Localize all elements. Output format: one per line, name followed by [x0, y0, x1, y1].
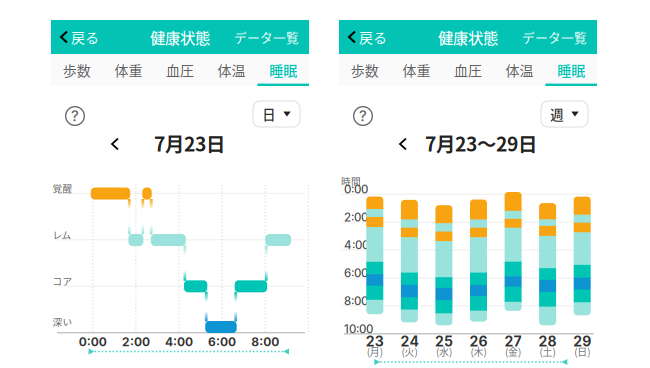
staticText: 血圧 — [166, 60, 194, 80]
button[interactable]: ヘルプ — [62, 103, 88, 129]
button[interactable]: 歩数 — [339, 54, 391, 86]
staticText: (月) — [367, 344, 383, 359]
staticText: 健康状態 — [438, 26, 498, 48]
staticText: 0:00 — [79, 335, 107, 349]
button[interactable]: 睡眠 — [545, 54, 597, 86]
button[interactable]: 前へ — [104, 133, 126, 155]
staticText: 週 — [550, 104, 563, 124]
staticText: 6:00 — [344, 266, 368, 280]
staticText: (土) — [540, 344, 556, 359]
staticText: 7月23〜29日 — [425, 129, 537, 157]
button[interactable]: ヘルプ — [350, 103, 376, 129]
button[interactable]: 体温 — [494, 54, 545, 86]
staticText: (金) — [505, 344, 521, 359]
button[interactable]: 体重 — [103, 54, 154, 86]
staticText: データ一覧 — [522, 28, 587, 46]
staticText: (火) — [401, 344, 417, 359]
staticText: コア — [52, 274, 72, 288]
button[interactable]: 前へ — [392, 133, 414, 155]
staticText: 2:00 — [344, 210, 368, 224]
button[interactable]: データ一覧 — [522, 20, 597, 54]
staticText: ? — [359, 107, 367, 125]
button[interactable]: 歩数 — [51, 54, 103, 86]
staticText: 10:00 — [344, 322, 373, 336]
staticText: 体重 — [402, 60, 430, 80]
staticText: (日) — [574, 344, 590, 359]
staticText: (木) — [470, 344, 486, 359]
staticText: 歩数 — [63, 60, 91, 80]
staticText: 睡眠 — [269, 60, 297, 80]
button[interactable]: 睡眠 — [257, 54, 309, 86]
staticText: 時間 — [341, 174, 361, 188]
staticText: 28 — [539, 333, 557, 350]
staticText: データ一覧 — [234, 28, 299, 46]
staticText: 7月23日 — [154, 129, 225, 157]
staticText: 覚醒 — [52, 181, 72, 195]
staticText: 8:00 — [344, 294, 368, 308]
staticText: ? — [71, 107, 79, 125]
staticText: 体重 — [114, 60, 142, 80]
staticText: 4:00 — [165, 335, 193, 349]
staticText: 体温 — [506, 60, 534, 80]
button[interactable]: 戻る — [51, 20, 99, 54]
staticText: レム — [52, 228, 71, 241]
staticText: 2:00 — [122, 335, 150, 349]
staticText: 体温 — [218, 60, 246, 80]
button[interactable]: 週 — [541, 101, 588, 127]
button[interactable]: データ一覧 — [234, 20, 309, 54]
button[interactable]: 血圧 — [154, 54, 206, 86]
staticText: 23 — [366, 333, 384, 350]
staticText: 歩数 — [351, 60, 379, 80]
staticText: 日 — [262, 104, 275, 124]
staticText: 血圧 — [454, 60, 482, 80]
staticText: 深い — [52, 315, 72, 328]
staticText: (水) — [436, 344, 452, 359]
staticText: 25 — [435, 333, 453, 350]
button[interactable]: 体温 — [206, 54, 257, 86]
staticText: 8:00 — [251, 335, 279, 349]
staticText: 24 — [400, 333, 418, 350]
staticText: 26 — [469, 333, 487, 350]
staticText: 27 — [505, 333, 522, 350]
staticText: 戻る — [359, 27, 387, 47]
staticText: 戻る — [71, 27, 99, 47]
staticText: 4:00 — [344, 238, 369, 252]
staticText: 29 — [573, 333, 591, 350]
button[interactable]: 日 — [253, 101, 300, 127]
staticText: 6:00 — [208, 335, 236, 349]
button[interactable]: 戻る — [339, 20, 387, 54]
staticText: 健康状態 — [150, 26, 210, 48]
button[interactable]: 体重 — [391, 54, 442, 86]
button[interactable]: 血圧 — [442, 54, 494, 86]
staticText: 0:00 — [344, 182, 368, 196]
staticText: 睡眠 — [557, 60, 585, 80]
